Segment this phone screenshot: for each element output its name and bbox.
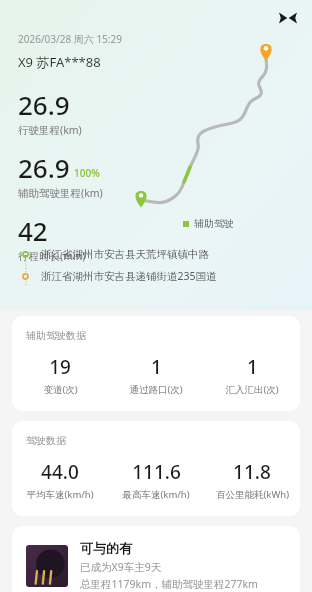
staticText: 19 [49,354,71,380]
staticText: 浙江省湖州市安吉县天荒坪镇镇中路 [41,248,209,261]
staticText: 可与的有 [80,540,132,556]
staticText: 26.9 [18,87,70,122]
staticText: 总里程1179km，辅助驾驶里程277km [80,577,258,591]
staticText: 1 [151,354,162,380]
staticText: 平均车速(km/h) [26,488,94,501]
staticText: 1 [247,354,258,380]
staticText: 行驶里程(km) [18,123,82,137]
button[interactable]: XPeng [274,4,302,32]
staticText: 26.9 [18,150,70,185]
staticText: 辅助驾驶 [194,217,234,230]
staticText: 辅助驾驶里程(km) [18,186,103,200]
button[interactable]: 驾驶数据 [12,421,300,516]
staticText: 百公里能耗(kWh) [216,488,289,501]
staticText: 2026/03/28 周六 15:29 [18,32,122,46]
staticText: 44.0 [41,459,79,485]
staticText: X9 苏FA***88 [18,53,101,71]
button[interactable]: 可与的有 [12,526,300,592]
staticText: 11.8 [233,459,271,485]
staticText: 通过路口(次) [129,383,183,396]
button[interactable]: 辅助驾驶数据 [12,316,300,411]
staticText: 辅助驾驶数据 [26,329,86,342]
staticText: 变道(次) [43,383,78,396]
staticText: 100% [74,166,100,180]
staticText: 最高车速(km/h) [122,488,190,501]
staticText: 111.6 [132,459,181,485]
staticText: 42 [18,213,48,248]
staticText: 已成为X9车主9天 [80,560,162,574]
staticText: 浙江省湖州市安吉县递铺街道235国道 [41,269,217,283]
staticText: 行程时长(min) [18,249,86,263]
staticText: 汇入汇出(次) [225,383,279,396]
staticText: 驾驶数据 [26,434,66,447]
